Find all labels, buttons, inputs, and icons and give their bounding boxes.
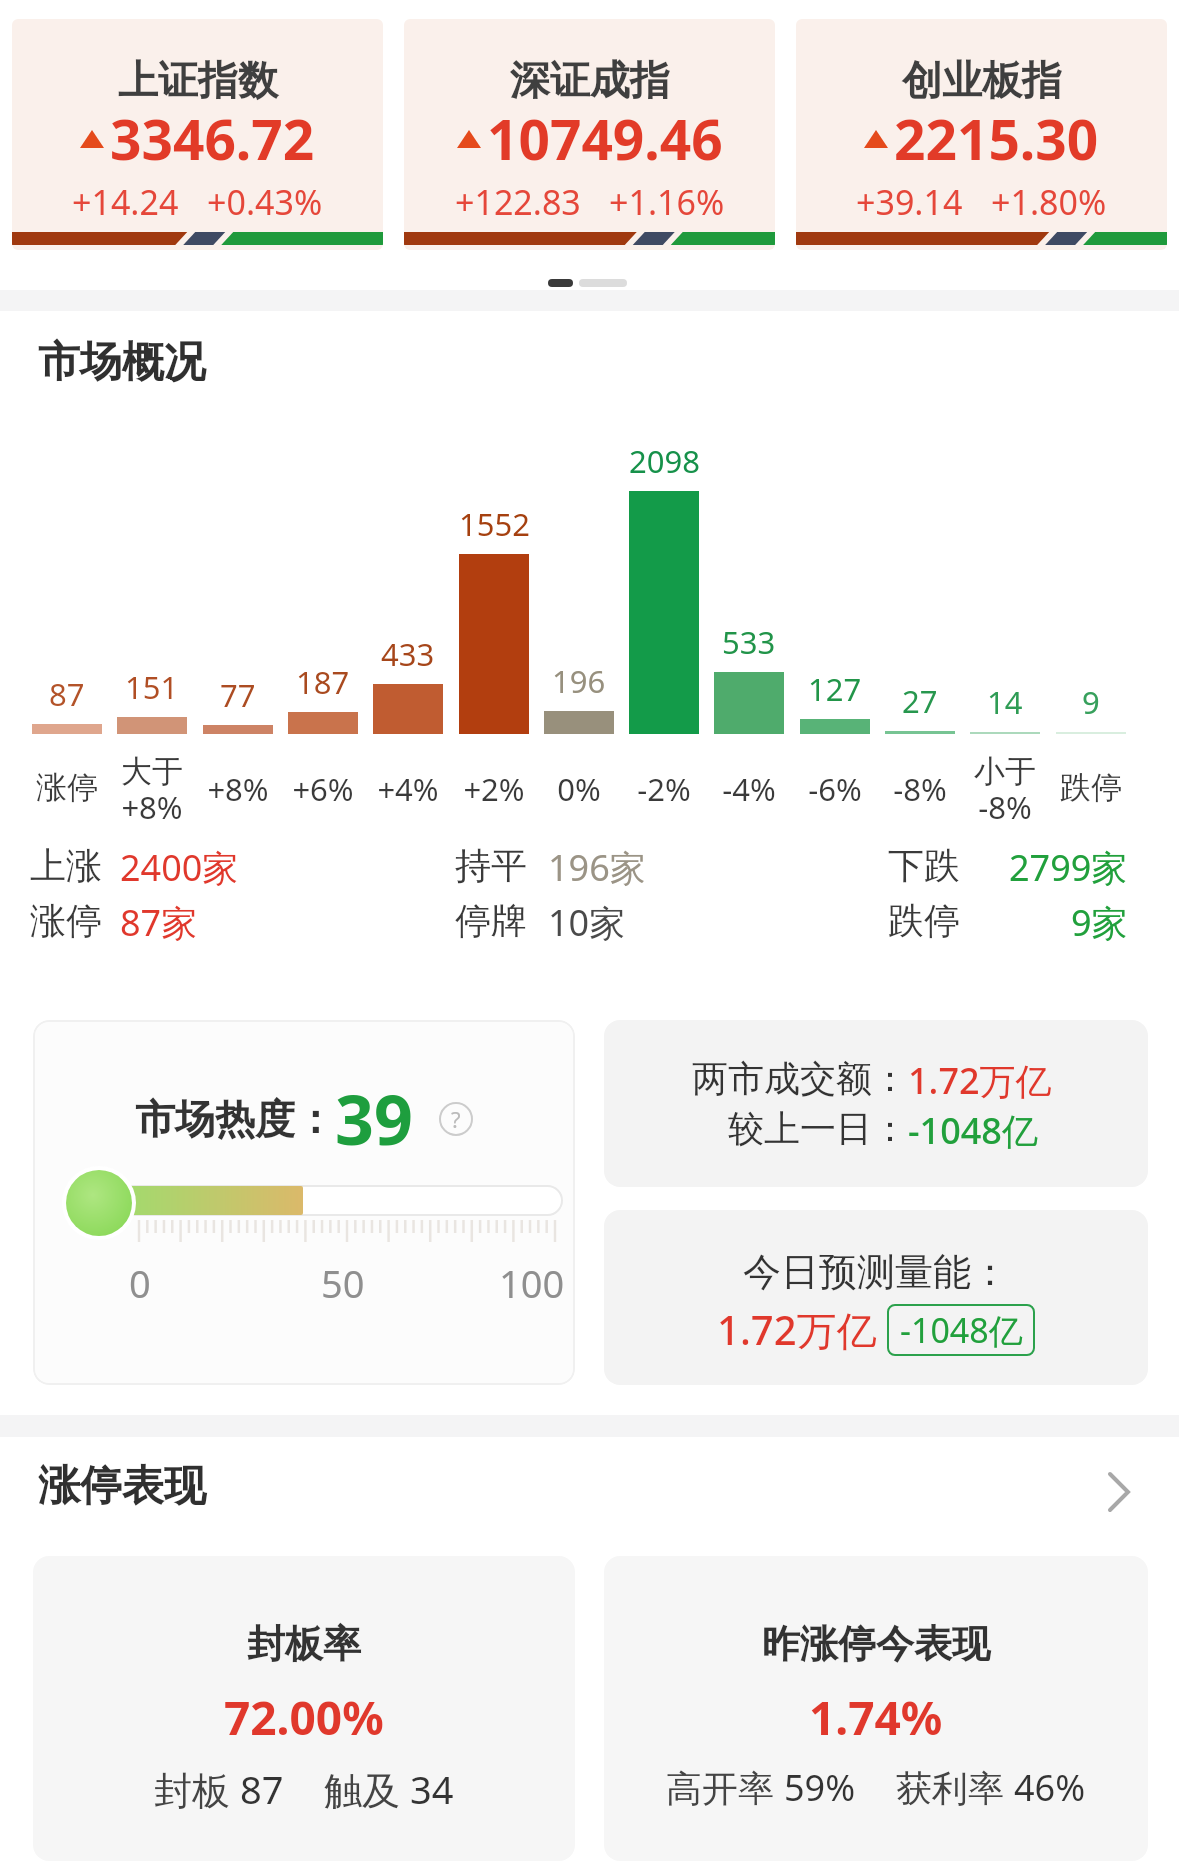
- staticText: -4%: [722, 768, 776, 810]
- staticText: 较上一日：: [728, 1106, 908, 1151]
- staticText: 停牌: [455, 898, 527, 943]
- staticText: 14: [987, 681, 1023, 723]
- staticText: 59%: [784, 1763, 856, 1812]
- staticText: 100: [499, 1257, 565, 1309]
- staticText: 0%: [557, 768, 601, 810]
- staticText: 10749.46: [487, 101, 723, 176]
- staticText: 封板率: [247, 1620, 361, 1668]
- staticText: -1048亿: [900, 1307, 1023, 1353]
- staticText: 151: [125, 666, 179, 708]
- staticText: 封板: [154, 1763, 240, 1815]
- staticText: 涨停: [36, 768, 98, 807]
- staticText: 77: [220, 674, 256, 716]
- staticText: 196: [552, 660, 606, 702]
- staticText: 34: [410, 1763, 454, 1815]
- staticText: 昨涨停今表现: [762, 1620, 990, 1668]
- staticText: 市场概况: [38, 336, 206, 389]
- staticText: 2400家: [120, 843, 239, 892]
- staticText: 深证成指: [510, 55, 670, 105]
- staticText: 0: [129, 1257, 151, 1309]
- staticText: 433: [381, 633, 435, 675]
- staticText: +2%: [463, 768, 525, 810]
- staticText: +6%: [292, 768, 354, 810]
- staticText: 上涨: [30, 843, 102, 888]
- staticText: 9家: [1071, 898, 1128, 947]
- staticText: +0.43%: [207, 179, 323, 225]
- staticText: +39.14: [856, 179, 963, 225]
- staticText: +8%: [207, 768, 269, 810]
- staticText: 1552: [459, 503, 530, 545]
- staticText: 50: [321, 1257, 365, 1309]
- staticText: 2215.30: [894, 101, 1099, 176]
- staticText: ?: [451, 1104, 461, 1134]
- button[interactable]: 上证指数: [12, 19, 383, 250]
- staticText: -8%: [893, 768, 947, 810]
- staticText: 持平: [455, 843, 527, 888]
- button[interactable]: 创业板指: [796, 19, 1167, 250]
- staticText: +1.16%: [609, 179, 725, 225]
- staticText: 下跌: [888, 843, 960, 888]
- staticText: 跌停: [888, 898, 960, 943]
- staticText: 两市成交额：: [692, 1056, 908, 1101]
- staticText: 187: [296, 661, 350, 703]
- staticText: 127: [808, 668, 862, 710]
- staticText: 39: [335, 1072, 413, 1165]
- staticText: 市场热度：: [135, 1094, 335, 1144]
- staticText: 1.72万亿: [717, 1302, 877, 1357]
- staticText: 触及: [324, 1763, 410, 1815]
- staticText: +14.24: [72, 179, 179, 225]
- staticText: 上证指数: [118, 55, 278, 105]
- staticText: 1.74%: [809, 1686, 943, 1749]
- staticText: +4%: [377, 768, 439, 810]
- button[interactable]: 封板率: [33, 1556, 575, 1861]
- staticText: 27: [902, 680, 938, 722]
- staticText: 2098: [629, 440, 700, 482]
- button[interactable]: 深证成指: [404, 19, 775, 250]
- staticText: 大于 +8%: [121, 752, 183, 828]
- staticText: 87家: [120, 898, 198, 947]
- staticText: 533: [722, 621, 776, 663]
- staticText: 小于 -8%: [974, 752, 1036, 828]
- staticText: 46%: [1014, 1763, 1086, 1812]
- staticText: 涨停表现: [38, 1460, 206, 1513]
- staticText: 涨停: [30, 898, 102, 943]
- button[interactable]: 今日预测量能：: [604, 1210, 1148, 1385]
- button[interactable]: 两市成交额：: [604, 1020, 1148, 1187]
- staticText: 1.72万亿: [908, 1056, 1052, 1105]
- staticText: 创业板指: [902, 55, 1062, 105]
- staticText: 196家: [548, 843, 646, 892]
- staticText: 高开率: [666, 1763, 784, 1812]
- staticText: 9: [1082, 681, 1100, 723]
- staticText: +1.80%: [991, 179, 1107, 225]
- button[interactable]: 市场热度：: [33, 1020, 575, 1385]
- staticText: 跌停: [1060, 768, 1122, 807]
- staticText: 今日预测量能：: [743, 1248, 1009, 1296]
- staticText: 87: [240, 1763, 284, 1815]
- button[interactable]: 昨涨停今表现: [604, 1556, 1148, 1861]
- staticText: 3346.72: [110, 101, 315, 176]
- staticText: -2%: [637, 768, 691, 810]
- staticText: 10家: [548, 898, 626, 947]
- staticText: -6%: [808, 768, 862, 810]
- staticText: 2799家: [1009, 843, 1128, 892]
- staticText: -1048亿: [908, 1106, 1038, 1155]
- staticText: 87: [49, 673, 85, 715]
- staticText: 72.00%: [224, 1686, 384, 1749]
- staticText: 获利率: [896, 1763, 1014, 1812]
- staticText: +122.83: [455, 179, 581, 225]
